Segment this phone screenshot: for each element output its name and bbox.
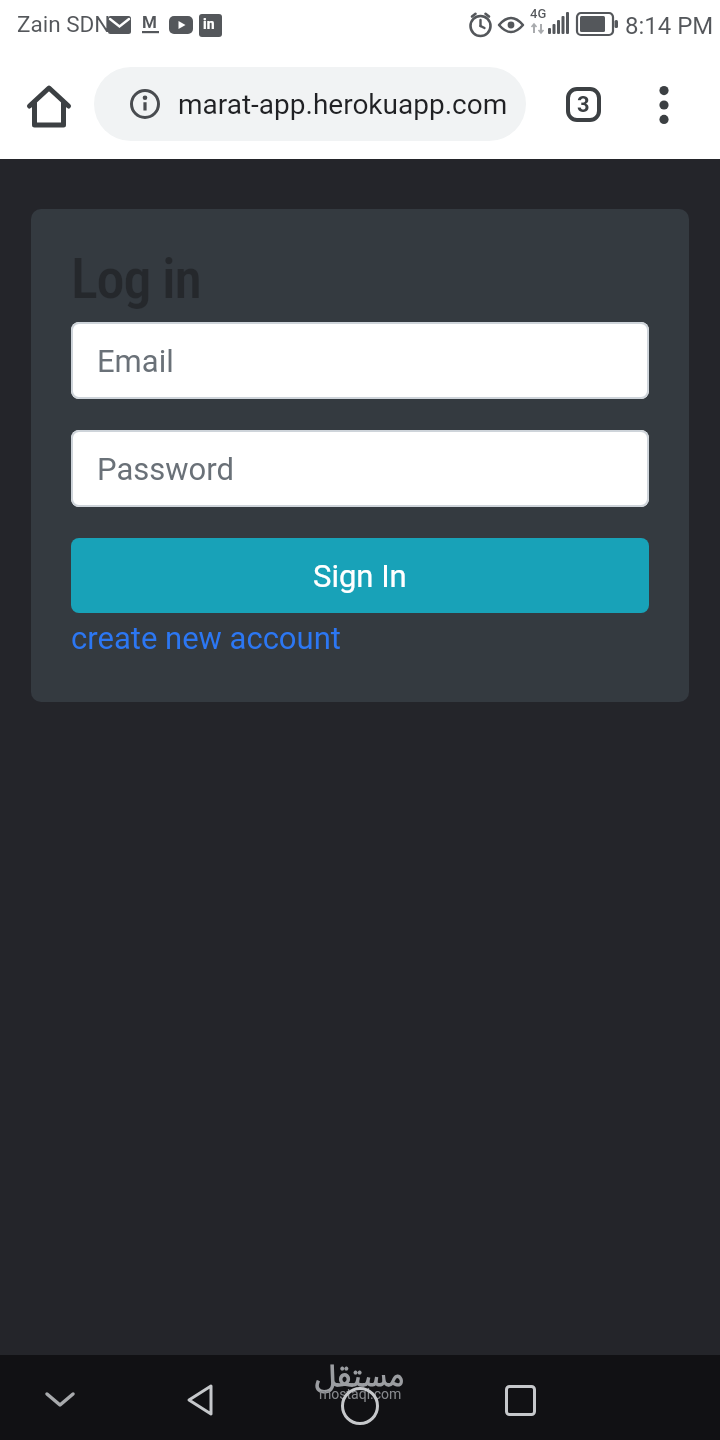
staticText: Email (97, 343, 174, 379)
button[interactable]: Sign In (71, 538, 649, 613)
staticText: مستقل (315, 1345, 405, 1401)
staticText: create new account (71, 620, 341, 656)
staticText: in (203, 16, 215, 32)
staticText: 3 (577, 92, 590, 118)
staticText: Log in (71, 246, 201, 312)
button[interactable] (640, 77, 688, 132)
staticText: Password (97, 451, 234, 487)
button[interactable]: create new account (71, 616, 341, 660)
staticText: mostaql.com (319, 1386, 402, 1402)
button[interactable]: Email (71, 322, 649, 399)
button[interactable] (30, 1370, 90, 1430)
button[interactable] (20, 75, 78, 139)
button[interactable]: marat-app.herokuapp.com (94, 67, 526, 141)
button[interactable] (170, 1370, 230, 1430)
staticText: 8:14 PM (625, 12, 714, 40)
staticText: Zain SDN (17, 11, 111, 37)
button[interactable]: 3 (556, 77, 611, 132)
staticText: Sign In (313, 558, 407, 594)
staticText: marat-app.herokuapp.com (178, 88, 508, 121)
button[interactable] (490, 1370, 550, 1430)
staticText: 4G (530, 6, 547, 21)
button[interactable] (330, 1376, 390, 1436)
staticText: M (142, 12, 157, 32)
button[interactable]: Password (71, 430, 649, 507)
